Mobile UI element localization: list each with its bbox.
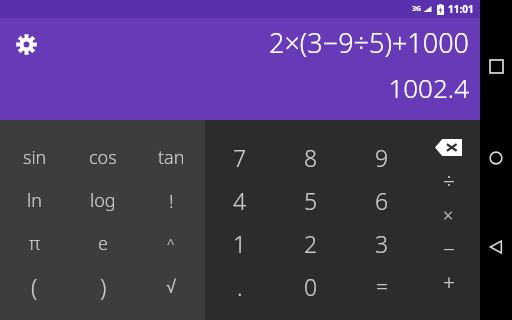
staticText: 1 bbox=[233, 228, 247, 259]
button[interactable]: . bbox=[205, 265, 275, 308]
staticText: 2 bbox=[304, 228, 318, 259]
staticText: √ bbox=[166, 277, 176, 297]
staticText: ! bbox=[169, 188, 174, 214]
button[interactable]: sin bbox=[0, 135, 69, 179]
staticText: log bbox=[90, 188, 116, 213]
staticText: 3G bbox=[412, 4, 422, 14]
button[interactable]: 0 bbox=[275, 265, 346, 308]
button[interactable]: 7 bbox=[205, 135, 275, 179]
button[interactable]: ! bbox=[137, 179, 205, 222]
staticText: − bbox=[443, 235, 455, 264]
button[interactable]: Settings bbox=[5, 23, 47, 65]
staticText: ( bbox=[31, 271, 38, 302]
button[interactable]: 8 bbox=[275, 135, 346, 179]
staticText: + bbox=[443, 269, 455, 298]
staticText: tan bbox=[158, 145, 185, 170]
button[interactable]: − bbox=[417, 232, 480, 266]
staticText: 11:01 bbox=[448, 2, 474, 16]
button[interactable]: ÷ bbox=[417, 164, 480, 198]
staticText: ÷ bbox=[443, 167, 455, 196]
button[interactable]: 1 bbox=[205, 222, 275, 265]
staticText: × bbox=[443, 203, 454, 228]
button[interactable]: ^ bbox=[137, 222, 205, 265]
button[interactable]: Back bbox=[489, 240, 503, 254]
staticText: 4 bbox=[233, 185, 247, 216]
button[interactable]: 3 bbox=[346, 222, 417, 265]
button[interactable]: tan bbox=[137, 135, 205, 179]
staticText: ^ bbox=[167, 235, 175, 253]
button[interactable]: Home bbox=[489, 151, 503, 165]
staticText: ) bbox=[100, 271, 107, 302]
button[interactable]: 6 bbox=[346, 179, 417, 222]
button[interactable]: ln bbox=[0, 179, 69, 222]
staticText: 7 bbox=[233, 142, 247, 173]
button[interactable]: × bbox=[417, 198, 480, 232]
staticText: sin bbox=[23, 145, 47, 170]
staticText: 3 bbox=[375, 228, 389, 259]
staticText: 1002.4 bbox=[388, 70, 469, 105]
button[interactable]: log bbox=[69, 179, 137, 222]
staticText: . bbox=[237, 271, 243, 302]
staticText: π bbox=[29, 231, 41, 256]
button[interactable]: ( bbox=[0, 265, 69, 308]
staticText: ln bbox=[27, 188, 42, 213]
button[interactable]: 9 bbox=[346, 135, 417, 179]
staticText: e bbox=[98, 231, 108, 256]
button[interactable]: + bbox=[417, 266, 480, 300]
button[interactable]: 4 bbox=[205, 179, 275, 222]
staticText: 2×(3−9÷5)+1000 bbox=[269, 24, 469, 61]
button[interactable]: = bbox=[346, 265, 417, 308]
staticText: = bbox=[376, 272, 388, 301]
staticText: 6 bbox=[375, 185, 389, 216]
staticText: cos bbox=[89, 145, 117, 170]
staticText: 9 bbox=[375, 142, 389, 173]
button[interactable]: ) bbox=[69, 265, 137, 308]
button[interactable]: Recent apps bbox=[489, 59, 503, 73]
staticText: 5 bbox=[304, 185, 318, 216]
staticText: 8 bbox=[304, 142, 318, 173]
button[interactable]: √ bbox=[137, 265, 205, 308]
button[interactable]: 5 bbox=[275, 179, 346, 222]
button[interactable]: 2 bbox=[275, 222, 346, 265]
staticText: 0 bbox=[304, 271, 318, 302]
button[interactable]: e bbox=[69, 222, 137, 265]
button[interactable]: cos bbox=[69, 135, 137, 179]
button[interactable]: π bbox=[0, 222, 69, 265]
button[interactable]: Backspace bbox=[417, 130, 480, 164]
